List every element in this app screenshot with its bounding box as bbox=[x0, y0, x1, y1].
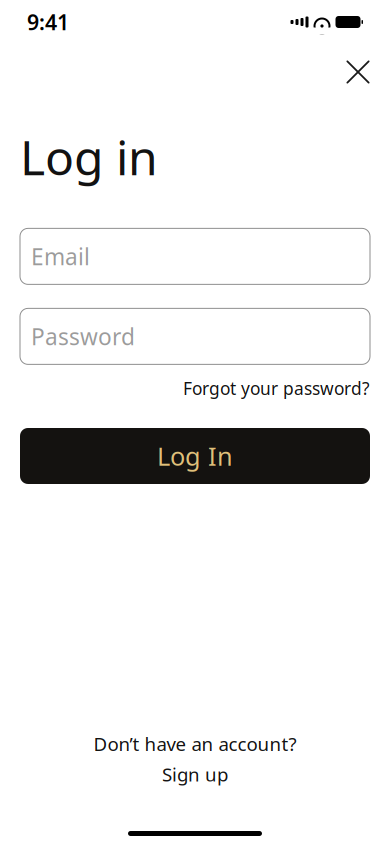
staticText: Log In bbox=[157, 439, 233, 473]
staticText: 9:41 bbox=[27, 8, 69, 36]
staticText: Email bbox=[31, 241, 90, 272]
button[interactable]: Log In bbox=[20, 428, 370, 484]
staticText: Don’t have an account? bbox=[93, 731, 296, 757]
button[interactable]: Sign up bbox=[162, 762, 228, 787]
button[interactable]: Close bbox=[336, 50, 380, 94]
staticText: Forgot your password? bbox=[183, 376, 370, 400]
staticText: Password bbox=[31, 321, 135, 352]
staticText: Log in bbox=[20, 124, 158, 189]
staticText: Sign up bbox=[162, 762, 228, 787]
button[interactable]: Forgot your password? bbox=[183, 376, 370, 400]
